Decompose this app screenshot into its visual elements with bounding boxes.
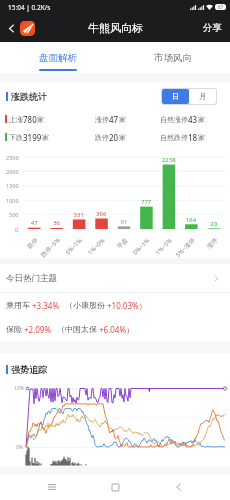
staticText: +3.34% <box>32 300 60 311</box>
staticText: 家 <box>198 133 205 142</box>
staticText: 上涨 <box>9 115 23 124</box>
staticText: 家 <box>198 115 205 124</box>
staticText: 20 <box>109 132 119 142</box>
button[interactable]: Recent apps <box>41 476 63 498</box>
button[interactable]: 盘面解析 <box>0 42 115 73</box>
button[interactable]: Open app <box>20 21 35 36</box>
staticText: 保险 <box>6 324 22 334</box>
staticText: 自然跌停 <box>160 133 188 142</box>
staticText: +6.04%） <box>99 324 135 335</box>
button[interactable]: 保险 <box>0 317 230 341</box>
staticText: 15:04 | 0.2K/s <box>8 3 51 12</box>
staticText: +2.09% <box>24 324 52 335</box>
staticText: （小康股份 <box>65 300 105 310</box>
staticText: 自然涨停 <box>160 115 188 124</box>
button[interactable]: 市场风向 <box>115 42 230 73</box>
staticText: 18 <box>188 132 198 142</box>
button[interactable]: Back <box>167 476 189 498</box>
staticText: 牛熊风向标 <box>88 21 143 35</box>
staticText: 涨停 <box>95 115 109 124</box>
button[interactable]: 乘用车 <box>0 293 230 317</box>
staticText: （中国太保 <box>57 324 97 334</box>
button[interactable]: Back <box>3 20 20 37</box>
staticText: 下跌 <box>9 133 23 142</box>
staticText: 乘用车 <box>6 300 30 310</box>
staticText: 涨跌统计 <box>11 91 47 102</box>
button[interactable]: Home <box>104 476 126 498</box>
staticText: 47 <box>109 114 119 124</box>
button[interactable]: 分享 <box>195 18 230 38</box>
button[interactable]: 月 <box>189 89 216 104</box>
staticText: 今日热门主题 <box>6 273 57 284</box>
staticText: 780 <box>23 114 37 124</box>
staticText: 月 <box>199 92 207 101</box>
staticText: 3199 <box>23 132 42 142</box>
button[interactable]: 今日热门主题 <box>0 264 230 292</box>
staticText: 家 <box>119 115 126 124</box>
staticText: 家 <box>37 115 44 124</box>
button[interactable]: 日 <box>162 89 189 104</box>
staticText: 家 <box>119 133 126 142</box>
staticText: 盘面解析 <box>39 52 77 64</box>
staticText: 市场风向 <box>154 52 192 64</box>
staticText: 跌停 <box>95 133 109 142</box>
staticText: 67 <box>218 4 224 10</box>
staticText: +10.03%） <box>107 300 147 311</box>
staticText: 43 <box>188 114 198 124</box>
staticText: 家 <box>42 133 49 142</box>
staticText: 强势追踪 <box>11 364 47 375</box>
staticText: 日 <box>172 92 180 101</box>
